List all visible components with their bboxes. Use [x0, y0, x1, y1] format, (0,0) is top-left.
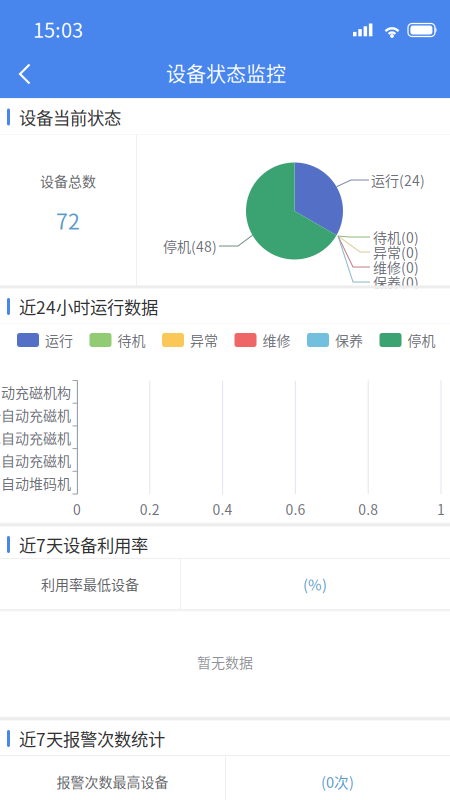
button[interactable]: Back [2, 50, 48, 98]
staticText: 三自动充磁机 [0, 450, 71, 470]
staticText: 近7天报警次数统计 [19, 726, 165, 751]
staticText: 维修(0) [373, 257, 419, 277]
staticText: 自动充磁机构 [0, 382, 71, 402]
staticText: 停机 [407, 330, 435, 350]
staticText: 近7天设备利用率 [19, 532, 148, 557]
staticText: 保养(0) [373, 272, 419, 292]
staticText: 0 [73, 499, 81, 519]
staticText: 待机 [117, 330, 145, 350]
staticText: 0.4 [213, 499, 233, 519]
staticText: 15:03 [33, 14, 83, 43]
staticText: (%) [303, 573, 327, 595]
staticText: 运行(24) [371, 170, 425, 190]
staticText: 运行 [45, 330, 73, 350]
staticText: 停机(48) [163, 236, 217, 256]
staticText: 四自动堆码机 [0, 473, 71, 493]
staticText: 0.6 [285, 499, 305, 519]
staticText: 待机(0) [373, 227, 419, 247]
staticText: 利用率最低设备 [41, 574, 139, 594]
staticText: 异常 [190, 330, 218, 350]
staticText: 近24小时运行数据 [19, 294, 158, 319]
staticText: 暂无数据 [197, 652, 253, 672]
staticText: 0.8 [358, 499, 378, 519]
staticText: 0.2 [140, 499, 160, 519]
staticText: 设备总数 [40, 170, 96, 191]
staticText: 设备当前状态 [19, 104, 121, 130]
staticText: 二自动充磁机 [0, 427, 71, 448]
staticText: 维修 [262, 330, 290, 350]
staticText: 设备状态监控 [166, 58, 286, 87]
staticText: 保养 [335, 330, 363, 350]
staticText: 72 [56, 205, 80, 236]
staticText: 1 [437, 499, 445, 519]
staticText: 异常(0) [373, 242, 419, 262]
staticText: 报警次数最高设备 [56, 771, 168, 792]
staticText: 一自动充磁机 [0, 405, 71, 425]
staticText: (0次) [321, 771, 354, 792]
